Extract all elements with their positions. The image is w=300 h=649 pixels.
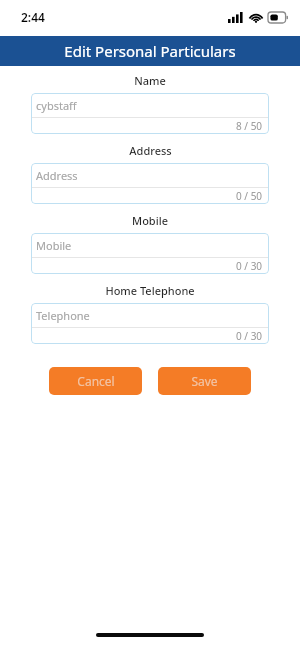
button[interactable]: Mobile	[31, 233, 269, 274]
staticText: 0 / 30	[236, 259, 263, 273]
staticText: Save	[191, 373, 218, 389]
staticText: 0 / 50	[236, 189, 263, 203]
button[interactable]: Address	[31, 163, 269, 204]
staticText: Home Telephone	[105, 283, 195, 298]
staticText: Cancel	[77, 373, 115, 389]
button[interactable]: Cancel	[49, 367, 142, 395]
staticText: Address	[129, 143, 172, 158]
staticText: Name	[134, 73, 166, 88]
other: Home indicator	[96, 633, 204, 637]
staticText: Address	[36, 168, 78, 183]
button[interactable]: Telephone	[31, 303, 269, 344]
button[interactable]: cybstaff	[31, 93, 269, 134]
button[interactable]: Save	[158, 367, 251, 395]
staticText: Mobile	[132, 213, 168, 228]
staticText: 2:44	[21, 9, 45, 25]
staticText: Mobile	[36, 238, 72, 253]
staticText: 0 / 30	[236, 329, 263, 343]
staticText: cybstaff	[36, 98, 77, 113]
staticText: Telephone	[36, 308, 90, 323]
staticText: Edit Personal Particulars	[64, 41, 236, 61]
staticText: 8 / 50	[236, 119, 263, 133]
